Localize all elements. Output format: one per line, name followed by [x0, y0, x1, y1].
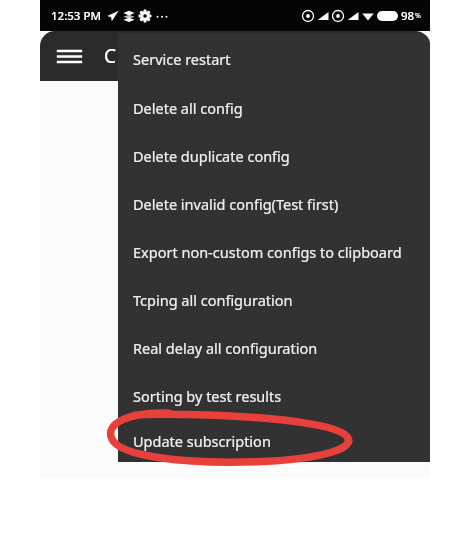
staticText: %: [415, 11, 421, 21]
button[interactable]: Sorting by test results: [118, 372, 430, 420]
staticText: Service restart: [133, 49, 231, 69]
button[interactable]: Delete duplicate config: [118, 132, 430, 180]
button[interactable]: Tcping all configuration: [118, 276, 430, 324]
staticText: Sorting by test results: [133, 386, 282, 406]
staticText: C: [104, 43, 117, 69]
staticText: Delete invalid config(Test first): [133, 194, 339, 214]
staticText: Delete all config: [133, 98, 243, 118]
button[interactable]: Service restart: [118, 33, 430, 84]
staticText: Update subscription: [133, 431, 271, 451]
staticText: 12:53 PM: [51, 8, 102, 24]
button[interactable]: Delete all config: [118, 84, 430, 132]
button[interactable]: Real delay all configuration: [118, 324, 430, 372]
button[interactable]: Open navigation drawer: [48, 35, 90, 77]
staticText: Delete duplicate config: [133, 146, 290, 166]
button[interactable]: Delete invalid config(Test first): [118, 180, 430, 228]
button[interactable]: Update subscription: [118, 420, 430, 462]
staticText: 98: [401, 8, 415, 24]
button[interactable]: Export non-custom configs to clipboard: [118, 228, 430, 276]
staticText: Real delay all configuration: [133, 338, 318, 358]
staticText: Tcping all configuration: [133, 290, 293, 310]
staticText: Export non-custom configs to clipboard: [133, 242, 402, 262]
